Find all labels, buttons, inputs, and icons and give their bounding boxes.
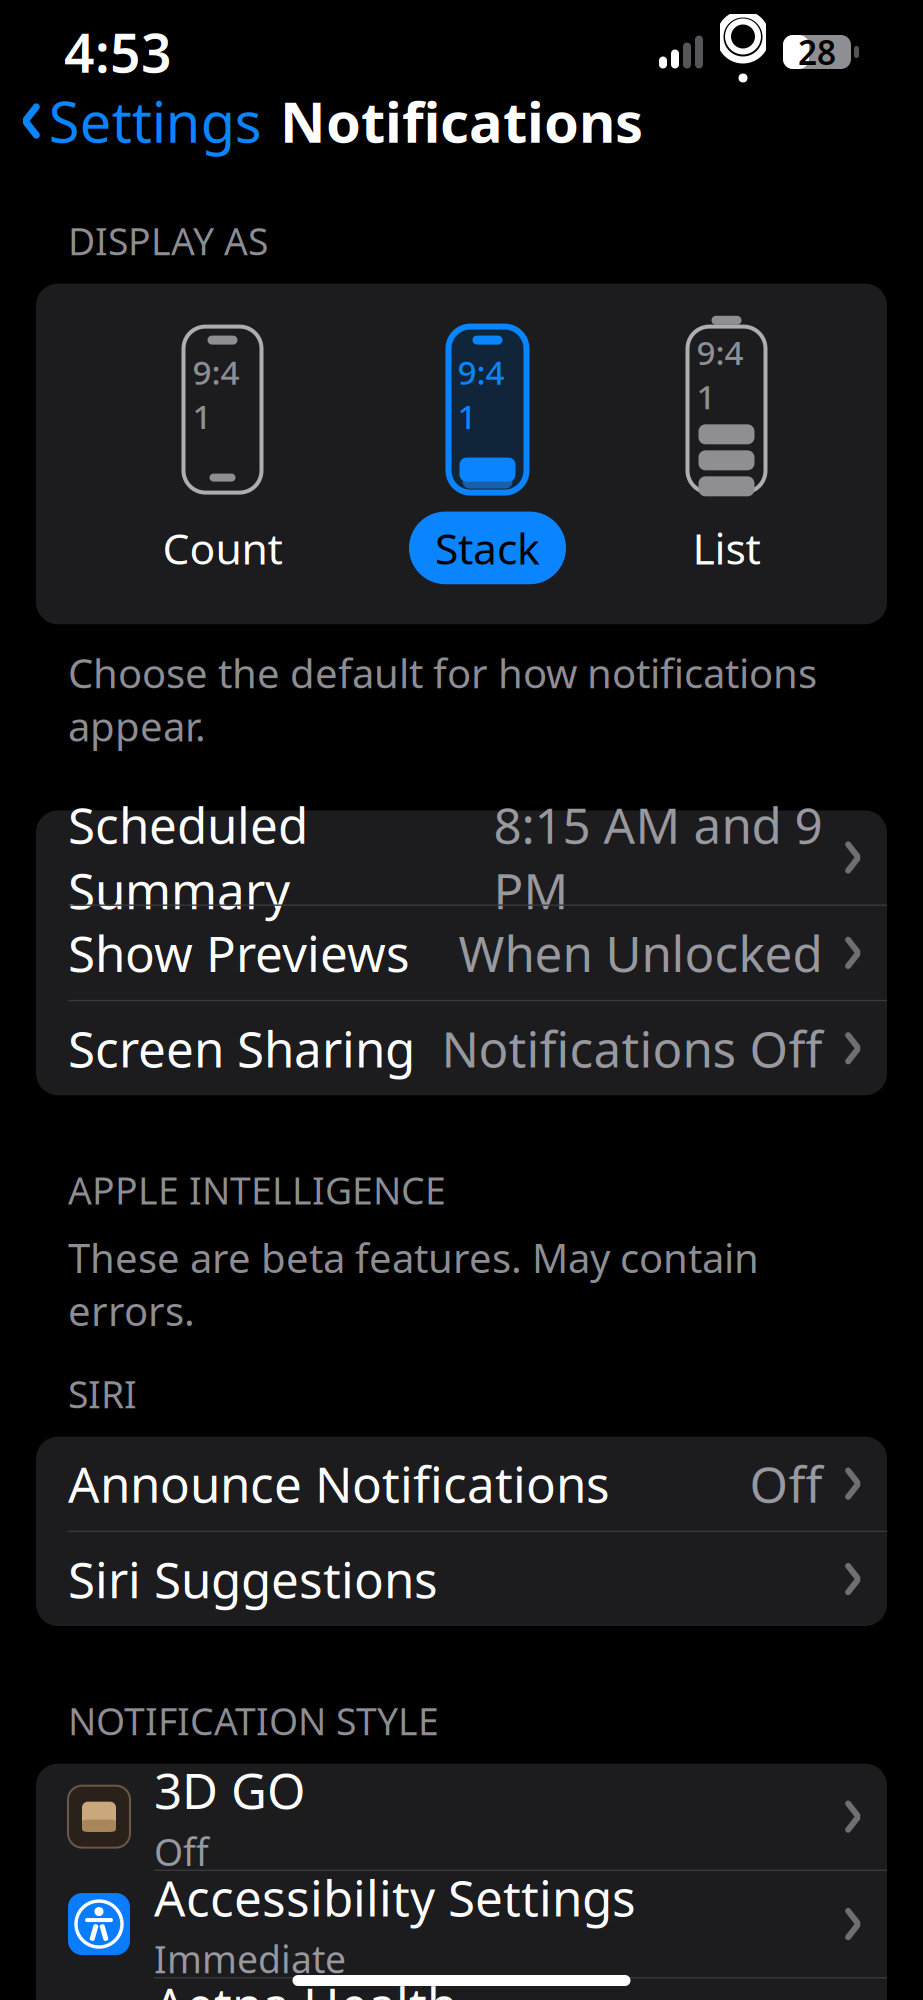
staticText: 28 [798,30,836,74]
staticText: NOTIFICATION STYLE [68,1696,439,1746]
button[interactable]: Accessibility Settings [36,1871,887,1977]
staticText: Immediate [154,1934,346,1984]
staticText: Aetna Health [154,1972,457,2000]
staticText: Off [154,1827,209,1876]
staticText: List [692,520,760,576]
staticText: DISPLAY AS [68,216,268,266]
staticText: Scheduled Summary [68,792,308,923]
staticText: 3D GO [154,1757,306,1823]
button[interactable]: 9:41 [666,324,786,584]
staticText: SIRI [68,1369,137,1419]
staticText: APPLE INTELLIGENCE [68,1165,446,1215]
button[interactable]: Settings [0,74,262,168]
button[interactable]: Scheduled Summary [36,810,887,904]
staticText: Count [162,520,282,576]
button[interactable]: 9:41 [409,324,566,584]
button[interactable]: Announce Notifications [36,1437,887,1531]
button[interactable]: Siri Suggestions [36,1532,887,1626]
button[interactable]: a [36,1978,887,2000]
staticText: Show Previews [68,920,410,986]
staticText: Choose the default for how notifications… [68,646,817,752]
staticText: Announce Notifications [68,1451,610,1516]
staticText: Accessibility Settings [154,1864,636,1930]
staticText: 9:41 [696,330,743,418]
button[interactable]: Show Previews [36,906,887,1000]
staticText: Siri Suggestions [68,1546,438,1612]
button[interactable]: Screen Sharing [36,1001,887,1095]
staticText: 8:15 AM and 9 PM [493,792,822,923]
staticText: Screen Sharing [68,1015,415,1081]
staticText: Notifications [280,84,643,158]
staticText: 9:41 [457,350,504,438]
button[interactable]: 9:41 [136,324,308,584]
staticText: 9:41 [192,350,239,438]
staticText: 4:53 [64,17,172,87]
staticText: These are beta features. May contain err… [68,1231,759,1337]
staticText: Stack [435,520,540,576]
staticText: Settings [49,84,262,158]
staticText: Off [749,1451,822,1516]
staticText: Notifications Off [441,1015,822,1081]
staticText: When Unlocked [458,920,822,986]
button[interactable]: 3D GO [36,1764,887,1870]
